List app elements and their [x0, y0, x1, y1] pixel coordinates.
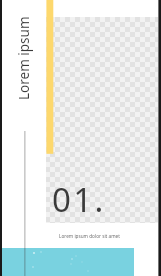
staticText: Lorem ipsum [15, 16, 33, 100]
staticText: Lorem ipsum dolor sit amet [59, 233, 120, 239]
staticText: 01. [52, 177, 106, 222]
